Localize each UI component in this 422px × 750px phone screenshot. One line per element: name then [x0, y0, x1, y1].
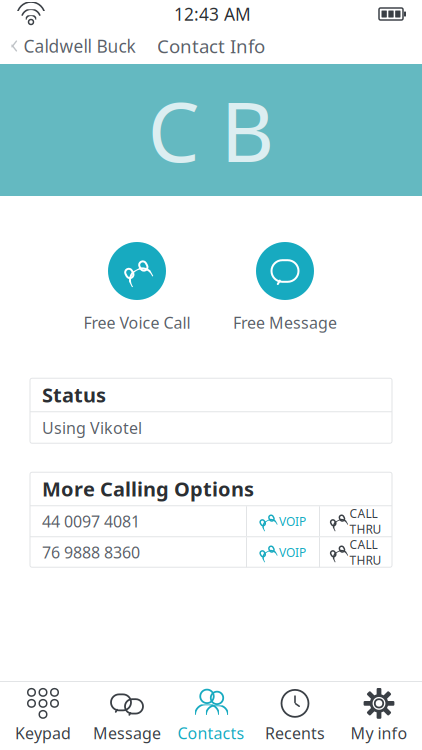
button[interactable]: Contacts [169, 685, 253, 747]
staticText: CALL THRU [349, 505, 381, 537]
button[interactable]: Caldwell Buck [0, 29, 145, 63]
button[interactable]: My info [337, 685, 421, 747]
button[interactable]: Free Message [225, 242, 345, 333]
staticText: Caldwell Buck [23, 34, 135, 57]
staticText: CALL THRU [349, 536, 381, 568]
button[interactable]: Recents [253, 685, 337, 747]
staticText: Free Message [233, 312, 337, 333]
staticText: 44 0097 4081 [42, 511, 140, 532]
staticText: VOIP [279, 513, 306, 529]
staticText: C B [147, 75, 274, 185]
staticText: Keypad [15, 722, 71, 744]
staticText: Contacts [177, 722, 244, 744]
button[interactable]: VOIP [247, 537, 319, 567]
staticText: 12:43 AM [174, 2, 251, 25]
button[interactable]: Free Voice Call [77, 242, 197, 333]
staticText: My info [350, 722, 407, 744]
staticText: Using Vikotel [42, 417, 142, 438]
button[interactable]: CALL THRU [320, 537, 392, 567]
staticText: Free Voice Call [83, 312, 190, 333]
staticText: More Calling Options [42, 475, 254, 502]
staticText: 76 9888 8360 [42, 542, 140, 563]
staticText: Status [42, 381, 106, 408]
staticText: VOIP [279, 544, 306, 560]
staticText: Contact Info [157, 34, 265, 58]
button[interactable]: VOIP [247, 506, 319, 536]
staticText: Recents [265, 722, 325, 744]
button[interactable]: CALL THRU [320, 506, 392, 536]
button[interactable]: Keypad [1, 685, 85, 747]
button[interactable]: Message [85, 685, 169, 747]
staticText: Message [93, 722, 161, 744]
